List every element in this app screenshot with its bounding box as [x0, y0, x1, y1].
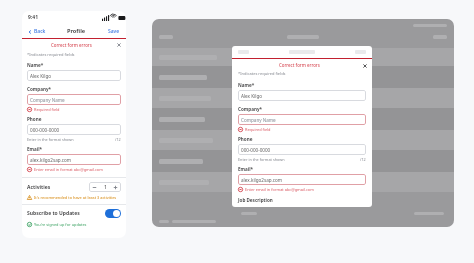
staticText: Save	[108, 28, 120, 35]
button[interactable]: Subscribe to Updates	[27, 209, 121, 218]
staticText: /12	[360, 157, 366, 162]
staticText: Company Name	[30, 97, 65, 103]
button[interactable]: 000-000-0000	[238, 144, 366, 155]
staticText: *Indicates required fields	[27, 52, 75, 57]
button[interactable]: Back	[27, 27, 47, 36]
staticText: Enter in the format shown	[27, 137, 74, 142]
button[interactable]: Increase	[110, 182, 121, 192]
staticText: 1	[104, 184, 107, 191]
staticText: Phone	[27, 116, 42, 122]
staticText: Phone	[238, 136, 253, 142]
button[interactable]: Dismiss	[116, 42, 121, 47]
button[interactable]: Save	[107, 27, 121, 36]
staticText: /12	[115, 137, 121, 142]
staticText: Name*	[27, 62, 44, 68]
button[interactable]: Decrease	[89, 182, 100, 192]
button[interactable]: Close dialog	[362, 63, 367, 68]
staticText: It's recommended to have at least 3 acti…	[34, 195, 117, 200]
staticText: Correct form errors	[51, 42, 92, 48]
staticText: Job Description	[238, 197, 273, 203]
button[interactable]: Alex Kilgo	[238, 90, 366, 101]
staticText: Enter in the format shown	[238, 157, 285, 162]
staticText: Alex Kilgo	[30, 73, 52, 79]
staticText: Subscribe to Updates	[27, 210, 80, 217]
staticText: Required field	[245, 127, 271, 132]
staticText: You're signed up for updates	[34, 222, 87, 227]
staticText: 000-000-0000	[30, 127, 60, 133]
staticText: Company Name	[241, 117, 276, 123]
staticText: Activities	[27, 184, 51, 191]
staticText: 000-000-0000	[241, 147, 271, 153]
staticText: Company*	[27, 86, 52, 92]
button[interactable]: alex.kilgo2sap.com	[27, 154, 121, 165]
staticText: Required field	[34, 107, 60, 112]
staticText: Name*	[238, 82, 255, 88]
staticText: Correct form errors	[279, 62, 320, 68]
staticText: alex.kilgo2sap.com	[241, 177, 283, 183]
button[interactable]: Company Name	[238, 114, 366, 125]
staticText: Back	[34, 28, 46, 35]
button[interactable]: alex.kilgo2sap.com	[238, 174, 366, 185]
button[interactable]: Company Name	[27, 94, 121, 105]
button[interactable]: Alex Kilgo	[27, 70, 121, 81]
staticText: Enter email in format abc@gmail.com	[245, 187, 314, 192]
staticText: Alex Kilgo	[241, 93, 263, 99]
button[interactable]: 000-000-0000	[27, 124, 121, 135]
staticText: Email*	[238, 166, 254, 172]
staticText: *Indicates required fields	[238, 71, 286, 76]
staticText: Profile	[67, 27, 86, 35]
staticText: Company*	[238, 106, 263, 112]
staticText: 9:41	[28, 14, 38, 21]
staticText: Enter email in format abc@gmail.com	[34, 167, 103, 172]
staticText: Email*	[27, 146, 43, 152]
staticText: alex.kilgo2sap.com	[30, 157, 72, 163]
